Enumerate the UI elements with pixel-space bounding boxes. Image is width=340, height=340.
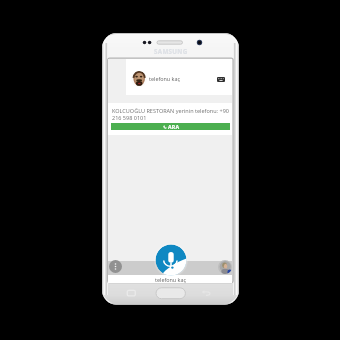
button[interactable]: telefonu kaç	[126, 59, 232, 95]
button[interactable]: ARA	[111, 123, 230, 130]
button[interactable]: More options	[109, 260, 122, 273]
staticText: telefonu kaç	[155, 276, 187, 283]
staticText: telefonu kaç	[149, 75, 181, 82]
button[interactable]: Account	[218, 260, 232, 274]
staticText: KOLCUOĞLU RESTORAN yerinin telefonu: +90	[112, 107, 229, 114]
button[interactable]: Voice search	[154, 243, 188, 277]
staticText: ARA	[168, 123, 180, 130]
staticText: 216 598 0101	[112, 114, 147, 121]
staticText: SAMSUNG	[154, 47, 188, 55]
